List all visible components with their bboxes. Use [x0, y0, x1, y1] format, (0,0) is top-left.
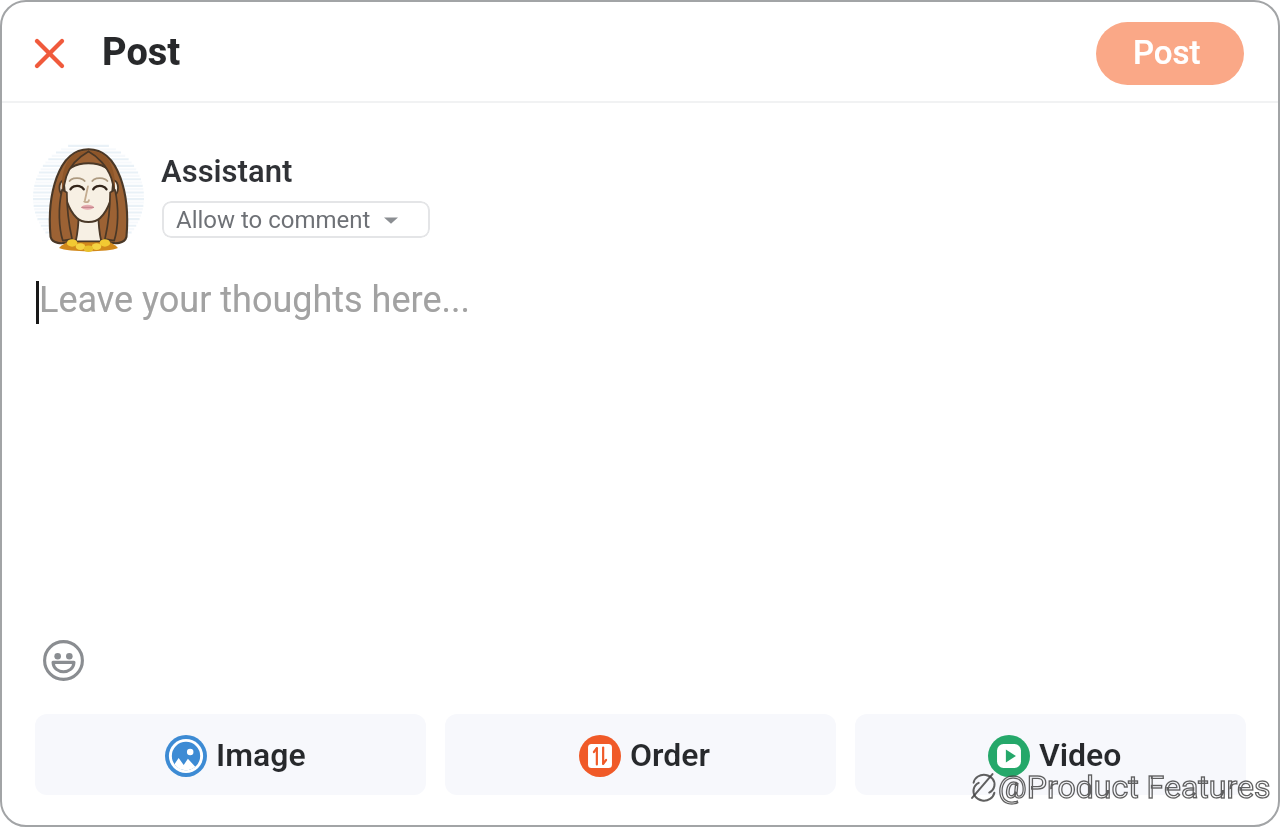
- button[interactable]: Close: [23, 27, 76, 80]
- button[interactable]: Leave your thoughts here...: [26, 264, 1250, 624]
- button[interactable]: Emoji: [37, 634, 89, 686]
- staticText: Video: [1039, 736, 1122, 774]
- button[interactable]: Post: [1096, 22, 1244, 85]
- button[interactable]: Allow to comment: [162, 201, 430, 238]
- staticText: Assistant: [161, 153, 293, 189]
- staticText: Post: [1133, 33, 1201, 72]
- staticText: Leave your thoughts here...: [39, 279, 470, 321]
- staticText: Allow to comment: [176, 206, 371, 234]
- staticText: Post: [102, 30, 181, 75]
- button[interactable]: Order: [445, 714, 836, 795]
- staticText: Image: [216, 736, 306, 774]
- staticText: @Product Features: [998, 768, 1271, 806]
- button[interactable]: Video: [855, 714, 1246, 795]
- staticText: Order: [630, 736, 711, 774]
- button[interactable]: Image: [35, 714, 426, 795]
